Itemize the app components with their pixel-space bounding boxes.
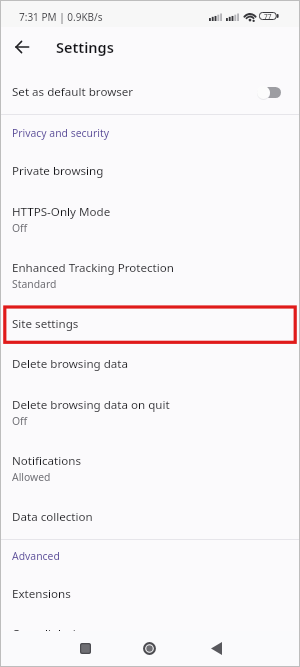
staticText: Open links in apps	[12, 626, 113, 642]
staticText: Off	[12, 414, 28, 428]
staticText: Privacy and security	[12, 126, 109, 140]
staticText: Delete browsing data on quit	[12, 397, 170, 413]
button[interactable]: Back	[5, 30, 38, 63]
staticText: Set as default browser	[12, 84, 134, 100]
staticText: Notifications	[12, 453, 81, 469]
button[interactable]: HTTPS-Only Mode	[0, 188, 300, 244]
staticText: Off	[12, 221, 28, 235]
button[interactable]: Data collection	[0, 493, 300, 534]
button[interactable]: Delete browsing data	[0, 340, 300, 381]
button[interactable]: Recent apps	[70, 631, 100, 666]
button[interactable]: Private browsing	[0, 147, 300, 188]
staticText: Standard	[12, 277, 57, 291]
staticText: 77	[264, 12, 272, 20]
staticText: Advanced	[12, 549, 60, 563]
button[interactable]: Set as default browser	[0, 76, 300, 113]
staticText: Enhanced Tracking Protection	[12, 260, 174, 276]
button[interactable]: Delete browsing data on quit	[0, 381, 300, 437]
button[interactable]: Back	[201, 631, 231, 666]
button[interactable]: Open links in apps	[0, 611, 300, 633]
button[interactable]: Home	[134, 631, 164, 666]
button[interactable]: Extensions	[0, 570, 300, 611]
staticText: Extensions	[12, 586, 71, 602]
button[interactable]: Site settings	[0, 300, 300, 341]
staticText: 7:31 PM | 0.9KB/s	[19, 10, 103, 24]
staticText: Allowed	[12, 470, 51, 484]
staticText: Data collection	[12, 509, 93, 525]
staticText: Private browsing	[12, 163, 104, 179]
staticText: Site settings	[12, 316, 79, 332]
staticText: HTTPS-Only Mode	[12, 204, 111, 220]
button[interactable]: Notifications	[0, 437, 300, 493]
staticText: Settings	[56, 37, 114, 57]
staticText: Delete browsing data	[12, 356, 129, 372]
button[interactable]: Enhanced Tracking Protection	[0, 244, 300, 300]
